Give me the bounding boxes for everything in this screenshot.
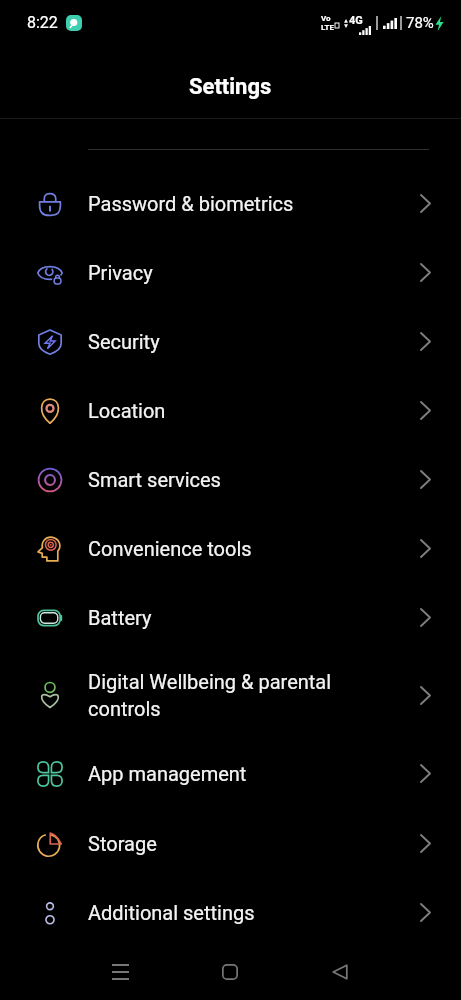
- button[interactable]: Location: [0, 376, 461, 445]
- button[interactable]: Home: [175, 943, 285, 1000]
- staticText: Additional settings: [88, 901, 393, 924]
- staticText: Battery: [88, 606, 393, 629]
- button[interactable]: Privacy: [0, 238, 461, 307]
- staticText: App management: [88, 762, 393, 785]
- staticText: 8:22: [27, 13, 58, 32]
- staticText: 4G: [349, 14, 363, 27]
- staticText: Smart services: [88, 468, 393, 491]
- staticText: Convenience tools: [88, 537, 393, 560]
- button[interactable]: Password & biometrics: [0, 169, 461, 238]
- button[interactable]: Battery: [0, 583, 461, 652]
- staticText: Storage: [88, 832, 393, 855]
- button[interactable]: Smart services: [0, 445, 461, 514]
- staticText: Location: [88, 399, 393, 422]
- button[interactable]: Back: [285, 943, 395, 1000]
- button[interactable]: Convenience tools: [0, 514, 461, 583]
- staticText: Password & biometrics: [88, 192, 393, 215]
- staticText: 78%: [406, 14, 434, 32]
- staticText: Privacy: [88, 261, 393, 284]
- staticText: Digital Wellbeing & parental controls: [88, 670, 393, 721]
- staticText: LTE: [321, 23, 334, 32]
- button[interactable]: Additional settings: [0, 878, 461, 947]
- button[interactable]: Storage: [0, 809, 461, 878]
- staticText: Security: [88, 330, 393, 353]
- staticText: Settings: [189, 74, 272, 100]
- button[interactable]: Security: [0, 307, 461, 376]
- staticText: Vo: [321, 14, 331, 23]
- button[interactable]: App management: [0, 738, 461, 809]
- button[interactable]: Recent apps: [65, 943, 175, 1000]
- button[interactable]: Digital Wellbeing & parental controls: [0, 652, 461, 738]
